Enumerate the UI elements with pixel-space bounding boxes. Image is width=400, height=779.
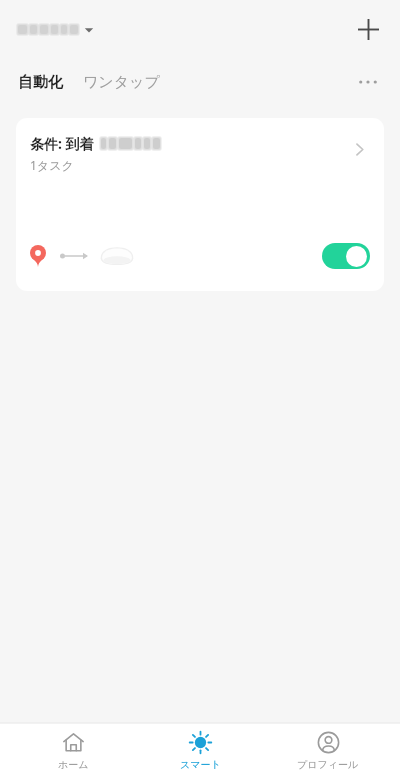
button[interactable]: Add automation [346,7,390,51]
button[interactable]: Open automation [344,134,374,164]
button[interactable]: スマート [145,723,255,779]
button[interactable]: Automation enabled [322,243,370,269]
staticText: 条件: 到着 [30,134,94,153]
staticText: 自動化 [18,73,63,92]
staticText: プロフィール [297,758,359,771]
button[interactable] [16,17,96,42]
staticText: ワンタップ [83,73,160,92]
staticText: 1タスク [30,157,74,173]
button[interactable]: ホーム [18,723,128,779]
button[interactable]: More options [346,60,390,104]
button[interactable]: 条件: 到着 [16,118,384,291]
button[interactable]: プロフィール [273,723,383,779]
staticText: ホーム [58,758,89,771]
button[interactable]: 自動化 [16,67,65,98]
button[interactable]: ワンタップ [81,67,162,98]
staticText: スマート [180,758,221,771]
